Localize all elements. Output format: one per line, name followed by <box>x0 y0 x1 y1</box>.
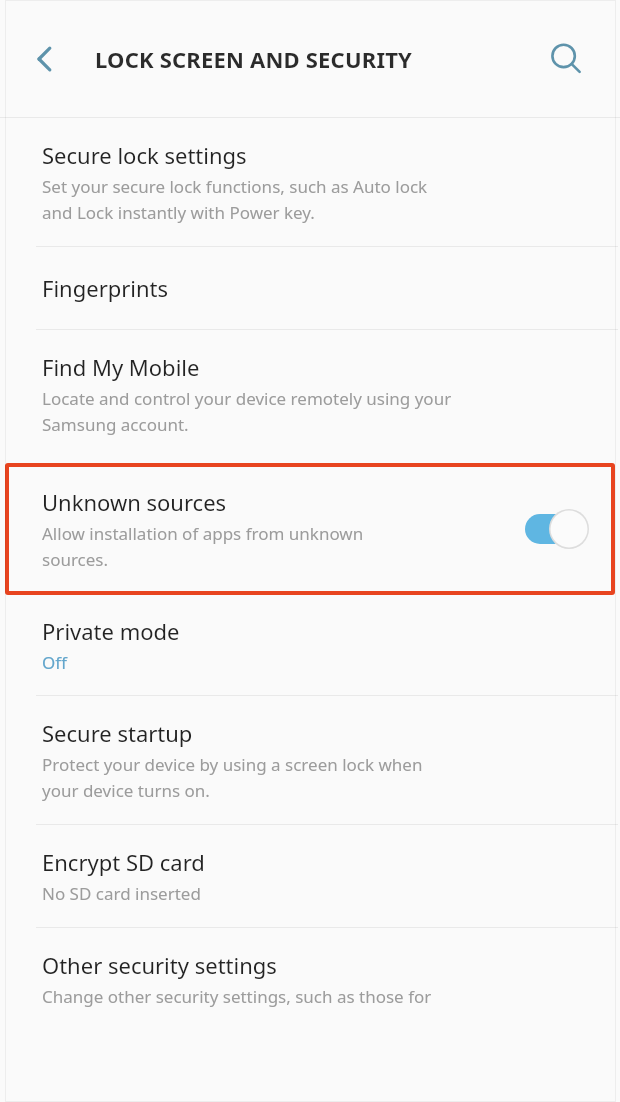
staticText: Change other security settings, such as … <box>42 985 432 1008</box>
staticText: Other security settings <box>42 950 277 980</box>
staticText: Off <box>42 651 67 674</box>
staticText: Locate and control your device remotely … <box>42 387 452 436</box>
button[interactable]: Back <box>14 28 76 90</box>
staticText: Find My Mobile <box>42 352 200 382</box>
button[interactable]: Encrypt SD card <box>0 825 620 927</box>
button[interactable]: Find My Mobile <box>0 330 620 458</box>
button[interactable]: Fingerprints <box>0 247 620 329</box>
staticText: Fingerprints <box>42 273 169 303</box>
button[interactable]: Private mode <box>0 595 620 695</box>
staticText: Private mode <box>42 616 180 646</box>
staticText: Allow installation of apps from unknown … <box>42 522 364 571</box>
button[interactable]: Search <box>538 31 594 87</box>
button[interactable]: Other security settings <box>0 928 620 1018</box>
staticText: Set your secure lock functions, such as … <box>42 175 428 224</box>
button[interactable]: Secure lock settings <box>0 118 620 246</box>
staticText: Unknown sources <box>42 487 227 517</box>
staticText: Protect your device by using a screen lo… <box>42 753 423 802</box>
staticText: Encrypt SD card <box>42 847 205 877</box>
button[interactable]: Secure startup <box>0 696 620 824</box>
button[interactable]: Unknown sources, on <box>521 505 599 553</box>
button[interactable]: Unknown sources <box>5 463 615 595</box>
staticText: Secure startup <box>42 718 193 748</box>
staticText: LOCK SCREEN AND SECURITY <box>95 44 413 74</box>
staticText: Secure lock settings <box>42 140 247 170</box>
staticText: No SD card inserted <box>42 882 201 905</box>
